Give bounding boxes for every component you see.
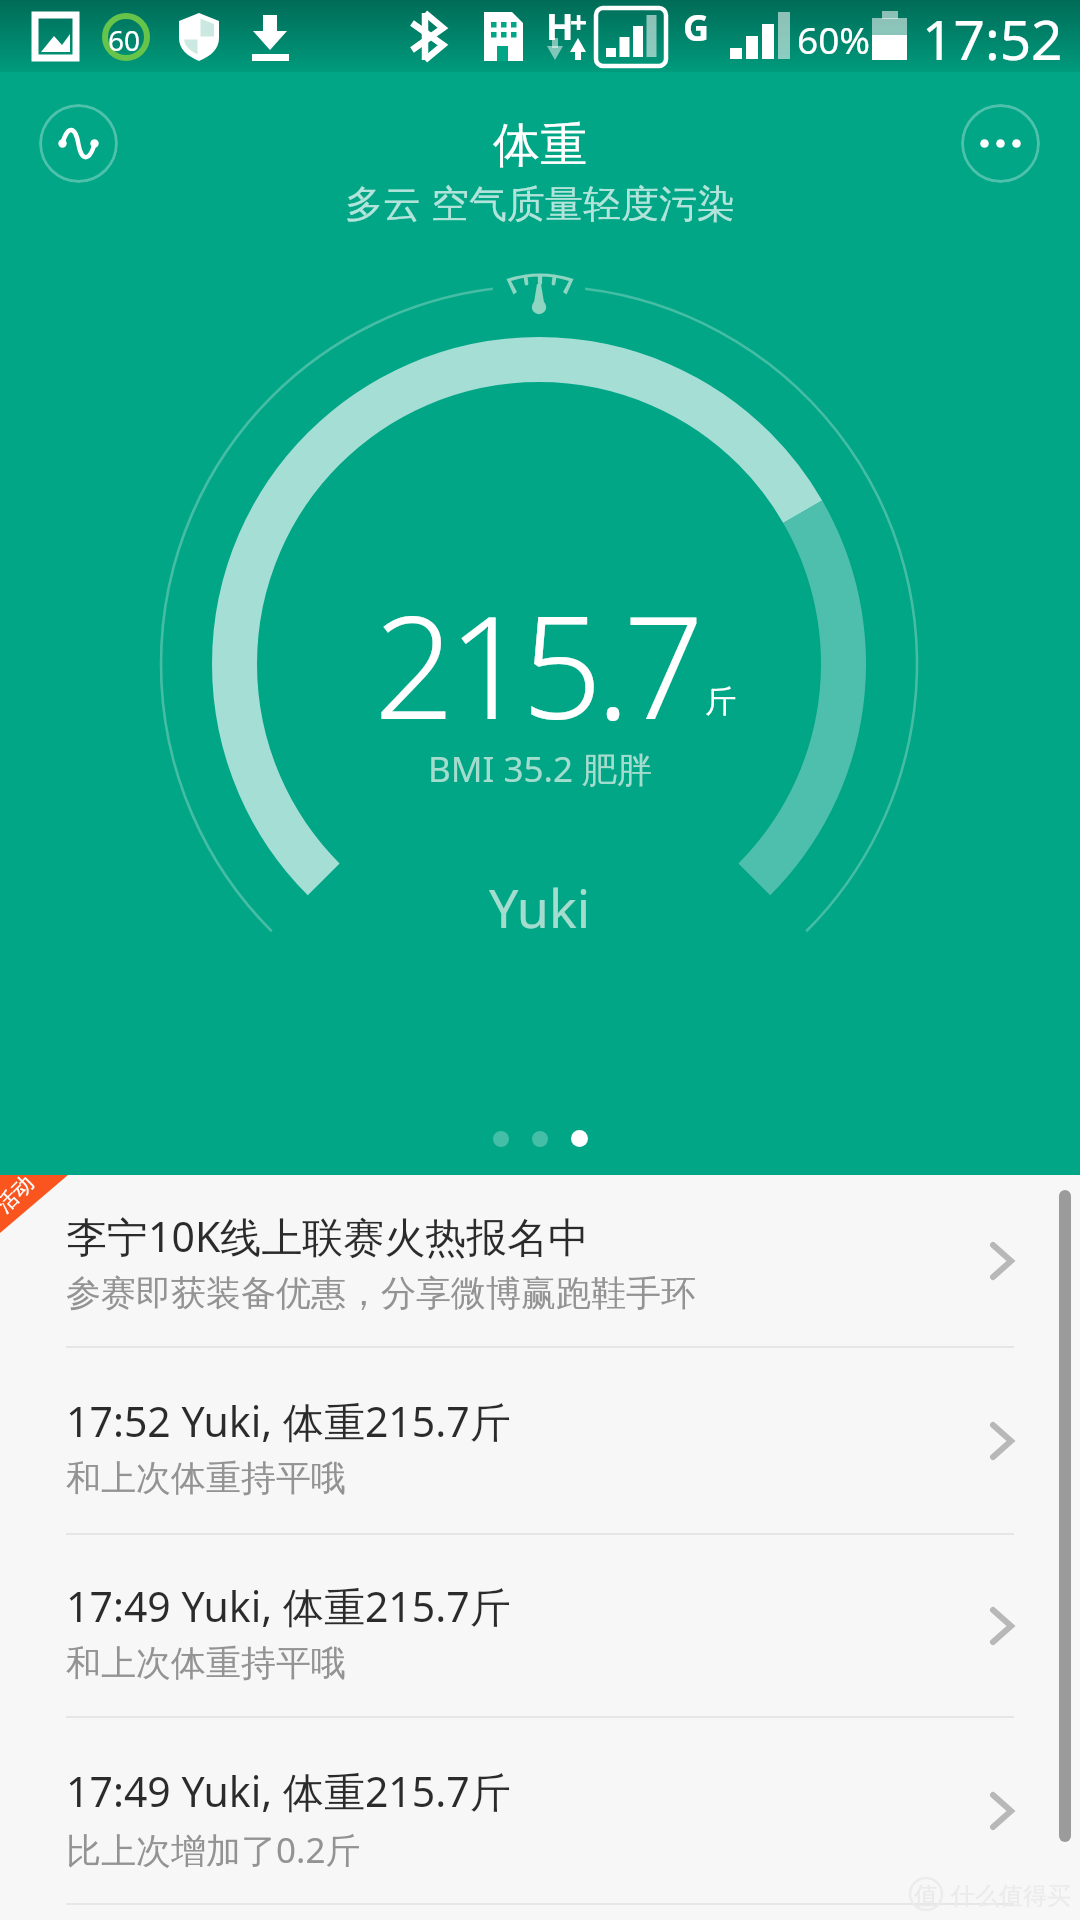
staticText: 60 [108, 21, 141, 59]
staticText: 李宁10K线上联赛火热报名中 [66, 1208, 590, 1264]
staticText: 60% [797, 14, 871, 64]
staticText: 215.7 [374, 568, 698, 760]
staticText: 17:52 Yuki, 体重215.7斤 [66, 1393, 511, 1449]
staticText: 参赛即获装备优惠，分享微博赢跑鞋手环 [66, 1271, 696, 1315]
button[interactable]: More options [961, 104, 1040, 183]
staticText: 斤 [705, 682, 736, 721]
staticText: 17:49 Yuki, 体重215.7斤 [66, 1578, 511, 1634]
staticText: 活动 [0, 1170, 39, 1218]
staticText: BMI 35.2 肥胖 [428, 745, 653, 793]
staticText: 多云 空气质量轻度污染 [345, 176, 735, 228]
staticText: 体重 [493, 116, 587, 175]
staticText: 和上次体重持平哦 [66, 1456, 346, 1500]
button[interactable]: 17:49 Yuki, 体重215.7斤 [0, 1718, 1080, 1905]
button[interactable]: Trend [39, 104, 118, 183]
staticText: 17:52 [922, 1, 1063, 76]
staticText: 值 [914, 1881, 938, 1911]
button[interactable]: 李宁10K线上联赛火热报名中 [0, 1175, 1080, 1348]
staticText: Yuki [489, 872, 591, 943]
staticText: 和上次体重持平哦 [66, 1641, 346, 1685]
staticText: 17:49 Yuki, 体重215.7斤 [66, 1763, 511, 1819]
staticText: G [683, 3, 710, 52]
staticText: + [570, 1, 588, 42]
staticText: 比上次增加了0.2斤 [66, 1826, 361, 1874]
button[interactable]: 17:52 Yuki, 体重215.7斤 [0, 1348, 1080, 1535]
staticText: H [546, 2, 574, 51]
staticText: 什么值得买 [951, 1881, 1071, 1911]
button[interactable]: 17:49 Yuki, 体重215.7斤 [0, 1535, 1080, 1718]
